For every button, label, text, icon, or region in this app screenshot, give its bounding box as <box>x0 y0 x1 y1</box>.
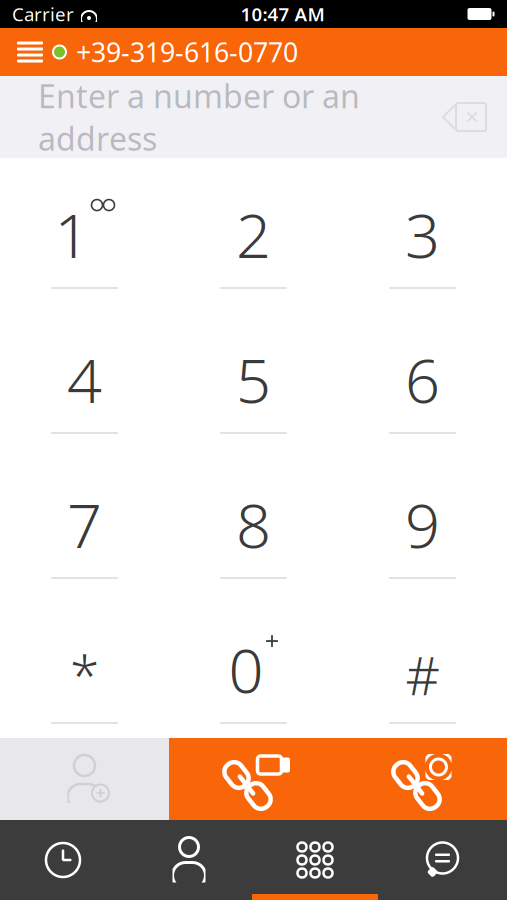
staticText: 3 <box>405 194 440 275</box>
button[interactable]: 6 <box>338 303 507 448</box>
button[interactable]: 3 <box>338 158 507 303</box>
button[interactable]: Keypad <box>252 820 378 900</box>
button[interactable]: * <box>0 593 169 738</box>
staticText: * <box>70 639 99 710</box>
staticText: 8 <box>236 484 271 565</box>
staticText: 9 <box>405 484 440 565</box>
button[interactable]: # <box>338 593 507 738</box>
button[interactable]: Video call <box>169 738 338 820</box>
button[interactable]: 5 <box>169 303 338 448</box>
button[interactable]: Messages <box>378 820 507 900</box>
button[interactable]: 8 <box>169 448 338 593</box>
button[interactable]: Backspace <box>435 92 493 142</box>
staticText: +39-319-616-0770 <box>76 34 298 70</box>
staticText: 7 <box>67 484 102 565</box>
button[interactable]: 0 <box>169 593 338 738</box>
staticText: 1 <box>54 194 89 275</box>
staticText: 4 <box>67 339 102 420</box>
button[interactable]: +39-319-616-0770 <box>52 26 298 78</box>
button[interactable]: 1 <box>0 158 169 303</box>
staticText: Carrier <box>12 2 74 26</box>
staticText: 2 <box>236 194 271 275</box>
staticText: 0 <box>228 629 263 710</box>
staticText: 5 <box>236 339 271 420</box>
button[interactable]: 2 <box>169 158 338 303</box>
button[interactable]: Contacts <box>126 820 252 900</box>
button[interactable]: 4 <box>0 303 169 448</box>
button[interactable]: 7 <box>0 448 169 593</box>
staticText: 10:47 AM <box>240 2 324 26</box>
button[interactable]: Add contact <box>0 738 169 820</box>
staticText: Enter a number or an address <box>38 74 360 159</box>
staticText: # <box>405 639 439 710</box>
button[interactable]: Voice call <box>338 738 507 820</box>
button[interactable]: 9 <box>338 448 507 593</box>
button[interactable]: Menu <box>8 28 52 76</box>
button[interactable]: Recents <box>0 820 126 900</box>
staticText: 6 <box>405 339 440 420</box>
